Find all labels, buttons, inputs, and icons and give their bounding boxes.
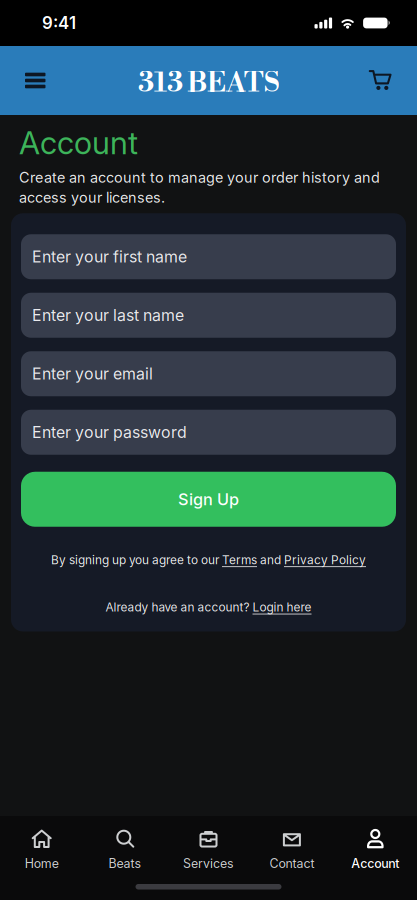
staticText: Already have an account? Login here: [105, 600, 311, 614]
button[interactable]: Enter your last name: [21, 293, 396, 338]
button[interactable]: Beats: [83, 816, 167, 871]
button[interactable]: Account: [334, 816, 417, 871]
staticText: Enter your password: [32, 423, 187, 442]
button[interactable]: Login here: [105, 600, 311, 614]
button[interactable]: Enter your first name: [21, 234, 396, 279]
button[interactable]: Cart: [361, 58, 417, 102]
staticText: 9:41: [42, 13, 76, 33]
button[interactable]: Enter your password: [21, 410, 396, 455]
staticText: Enter your email: [32, 364, 153, 383]
staticText: By signing up you agree to our Terms and…: [51, 553, 366, 567]
staticText: Account: [351, 856, 399, 871]
button[interactable]: Sign Up: [21, 472, 396, 527]
staticText: Home: [25, 856, 59, 871]
staticText: Create an account to manage your order h…: [19, 169, 380, 206]
staticText: Beats: [109, 856, 142, 871]
staticText: Contact: [269, 856, 314, 871]
button[interactable]: Terms and Privacy Policy: [51, 553, 366, 567]
button[interactable]: Home: [0, 816, 83, 871]
button[interactable]: Services: [167, 816, 250, 871]
button[interactable]: Menu: [0, 63, 53, 98]
button[interactable]: Enter your email: [21, 351, 396, 396]
staticText: Account: [19, 124, 138, 162]
staticText: Services: [183, 856, 234, 871]
staticText: Enter your first name: [32, 247, 187, 266]
button[interactable]: Contact: [250, 816, 334, 871]
staticText: Sign Up: [178, 489, 239, 509]
staticText: Enter your last name: [32, 306, 184, 325]
staticText: 313 BEATS: [138, 67, 279, 100]
